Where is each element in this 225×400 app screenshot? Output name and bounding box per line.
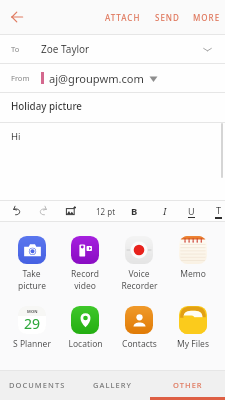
staticText: picture: [18, 280, 46, 292]
button[interactable]: ATTACH: [100, 5, 150, 30]
button[interactable]: B: [121, 201, 147, 221]
button[interactable]: Redo: [30, 201, 56, 221]
staticText: aj@groupwm.com: [49, 71, 144, 86]
staticText: Take: [22, 268, 41, 280]
staticText: SEND: [155, 12, 180, 23]
button[interactable]: Location: [58, 306, 112, 350]
staticText: video: [74, 280, 96, 292]
staticText: Location: [68, 338, 103, 350]
staticText: 29: [24, 314, 41, 333]
staticText: Zoe Taylor: [41, 42, 90, 56]
staticText: Record: [71, 268, 99, 280]
staticText: S Planner: [13, 338, 51, 350]
staticText: ATTACH: [105, 12, 141, 23]
button[interactable]: T: [205, 201, 225, 221]
button[interactable]: Record: [58, 236, 112, 292]
staticText: DOCUMENTS: [9, 380, 66, 390]
button[interactable]: Take: [5, 236, 58, 292]
button[interactable]: Contacts: [112, 306, 166, 350]
staticText: MON: [27, 309, 38, 314]
staticText: Holiday picture: [11, 100, 82, 113]
button[interactable]: I: [152, 201, 178, 221]
button[interactable]: MON: [5, 306, 58, 350]
staticText: Recorder: [121, 280, 158, 292]
staticText: Hi: [11, 130, 21, 143]
button[interactable]: From: [0, 64, 225, 92]
button[interactable]: Insert image: [58, 201, 84, 221]
button[interactable]: SEND: [150, 5, 188, 30]
staticText: Memo: [180, 268, 206, 280]
button[interactable]: To: [0, 35, 225, 63]
staticText: B: [131, 205, 138, 218]
staticText: I: [163, 205, 167, 218]
staticText: 12 pt: [96, 206, 116, 217]
button[interactable]: 12 pt: [93, 201, 119, 221]
staticText: Contacts: [122, 338, 157, 350]
button[interactable]: GALLERY: [75, 371, 150, 400]
button[interactable]: MORE: [188, 5, 225, 30]
staticText: From: [11, 73, 30, 83]
button[interactable]: Back: [0, 0, 31, 34]
staticText: T: [216, 204, 222, 216]
button[interactable]: Voice: [112, 236, 166, 292]
button[interactable]: Undo: [4, 201, 30, 221]
button[interactable]: My Files: [166, 306, 220, 350]
staticText: To: [11, 44, 20, 54]
staticText: My Files: [177, 338, 209, 350]
button[interactable]: Memo: [166, 236, 220, 280]
button[interactable]: OTHER: [150, 371, 225, 400]
button[interactable]: Holiday picture: [0, 93, 225, 122]
staticText: Voice: [128, 268, 150, 280]
button[interactable]: U: [178, 201, 204, 221]
staticText: U: [188, 205, 195, 217]
staticText: MORE: [193, 12, 221, 23]
staticText: GALLERY: [93, 380, 133, 390]
staticText: OTHER: [173, 380, 203, 390]
button[interactable]: DOCUMENTS: [0, 371, 75, 400]
